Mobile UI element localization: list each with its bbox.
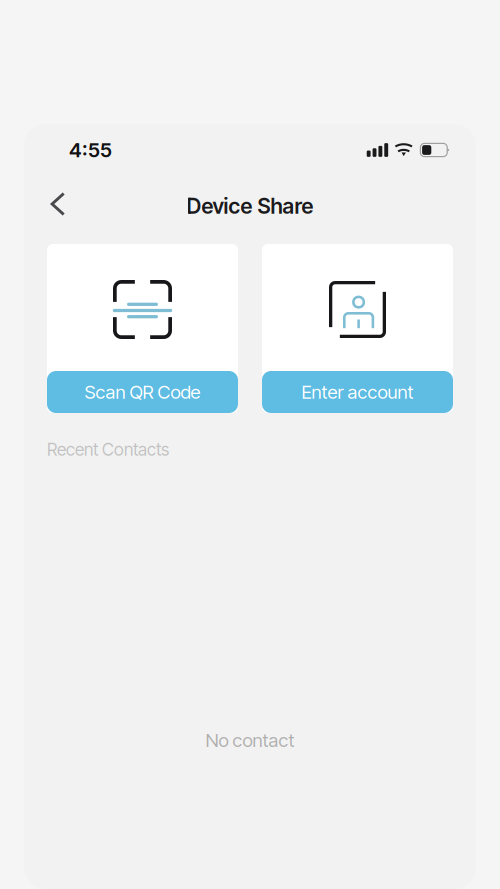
staticText: Enter account [301,381,413,403]
staticText: Scan QR Code [84,381,200,403]
button[interactable]: Back [36,182,80,226]
button[interactable]: Scan QR Code [47,244,238,413]
staticText: Device Share [186,193,313,219]
staticText: 4:55 [69,138,112,162]
button[interactable]: Enter account [262,244,453,413]
staticText: Recent Contacts [47,439,169,460]
staticText: No contact [205,729,294,752]
